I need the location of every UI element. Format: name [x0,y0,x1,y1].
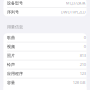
staticText: DWDTVPL2LD [61,9,86,15]
staticText: 210 [80,62,86,67]
staticText: 用量信息 [7,24,23,29]
staticText: 813 [80,53,86,58]
staticText: 视频 [7,44,15,49]
button[interactable]: 容量 [3,78,86,87]
staticText: 0 [84,44,86,49]
staticText: 0 [84,35,86,40]
button[interactable]: 应用程序 [3,69,86,78]
staticText: 容量 [7,80,15,85]
staticText: 128 GB [73,80,86,85]
button[interactable]: 设备型号 [3,0,86,7]
button[interactable]: 序列号 [3,8,86,16]
staticText: 设备型号 [7,1,23,5]
staticText: MLJ37ZA/A [66,0,86,6]
staticText: 铃声 [7,62,15,67]
button[interactable]: 视频 [3,42,86,51]
staticText: 歌曲 [7,35,15,40]
staticText: 应用程序 [7,71,23,76]
staticText: 序列号 [7,10,19,14]
button[interactable]: 歌曲 [3,33,86,42]
button[interactable]: 照片 [3,51,86,60]
button[interactable]: 铃声 [3,60,86,69]
staticText: 123 [80,71,86,76]
staticText: 照片 [7,53,15,58]
